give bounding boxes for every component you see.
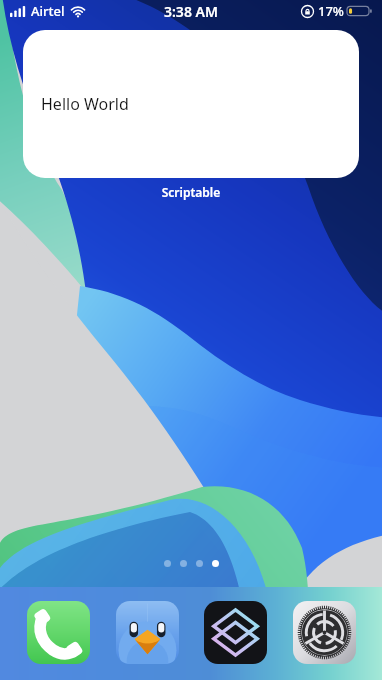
staticText: 3:38 AM [164, 2, 218, 21]
button[interactable]: Hello World [23, 30, 359, 178]
button[interactable]: Tweetbot [116, 601, 179, 664]
staticText: 17% [318, 2, 344, 20]
button[interactable]: Scriptable [204, 601, 267, 664]
button[interactable]: Phone [27, 601, 90, 664]
staticText: Scriptable [0, 184, 382, 200]
button[interactable]: Settings [293, 601, 356, 664]
staticText: Airtel [31, 2, 65, 20]
staticText: Hello World [41, 93, 129, 115]
